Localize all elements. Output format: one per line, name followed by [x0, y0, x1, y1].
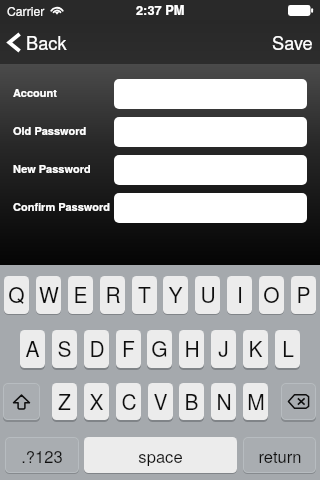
- staticText: J: [218, 333, 229, 363]
- button[interactable]: S: [52, 330, 77, 368]
- staticText: Carrier: [7, 2, 45, 19]
- staticText: V: [153, 386, 168, 416]
- button[interactable]: Q: [4, 276, 29, 314]
- button[interactable]: Shift: [3, 383, 40, 420]
- button[interactable]: E: [68, 276, 93, 314]
- staticText: I: [237, 279, 243, 309]
- button[interactable]: J: [211, 330, 236, 368]
- staticText: K: [248, 333, 263, 363]
- button[interactable]: Account: [13, 85, 57, 101]
- button[interactable]: X: [84, 383, 109, 420]
- staticText: .?123: [21, 444, 63, 468]
- staticText: S: [57, 333, 72, 363]
- staticText: U: [200, 279, 216, 309]
- button[interactable]: O: [259, 276, 284, 314]
- button[interactable]: Confirm Password: [13, 199, 111, 215]
- button[interactable]: [114, 155, 307, 185]
- button[interactable]: Back: [0, 23, 77, 61]
- staticText: P: [296, 279, 311, 309]
- button[interactable]: Save: [263, 21, 320, 63]
- button[interactable]: M: [243, 383, 268, 420]
- button[interactable]: Delete: [281, 383, 316, 420]
- staticText: Back: [26, 29, 67, 55]
- button[interactable]: New Password: [13, 161, 91, 177]
- staticText: X: [89, 386, 104, 416]
- button[interactable]: [114, 193, 307, 223]
- staticText: L: [282, 333, 294, 363]
- button[interactable]: V: [148, 383, 173, 420]
- staticText: N: [216, 386, 232, 416]
- staticText: C: [121, 386, 137, 416]
- staticText: A: [25, 333, 40, 363]
- staticText: 2:37 PM: [136, 1, 185, 19]
- button[interactable]: L: [275, 330, 300, 368]
- staticText: Z: [58, 386, 71, 416]
- button[interactable]: .?123: [5, 437, 79, 473]
- button[interactable]: U: [195, 276, 220, 314]
- button[interactable]: F: [116, 330, 141, 368]
- button[interactable]: I: [227, 276, 252, 314]
- staticText: E: [73, 279, 88, 309]
- button[interactable]: G: [147, 330, 172, 368]
- button[interactable]: W: [36, 276, 61, 314]
- staticText: G: [151, 333, 168, 363]
- button[interactable]: R: [100, 276, 125, 314]
- button[interactable]: Z: [52, 383, 77, 420]
- staticText: W: [39, 279, 59, 309]
- button[interactable]: B: [179, 383, 204, 420]
- staticText: F: [122, 333, 135, 363]
- staticText: Y: [168, 279, 183, 309]
- button[interactable]: Old Password: [13, 123, 87, 139]
- button[interactable]: A: [20, 330, 45, 368]
- button[interactable]: Y: [163, 276, 188, 314]
- button[interactable]: H: [179, 330, 204, 368]
- button[interactable]: return: [243, 437, 316, 473]
- button[interactable]: space: [84, 437, 237, 473]
- button[interactable]: [114, 117, 307, 147]
- button[interactable]: [114, 79, 307, 109]
- staticText: Q: [8, 279, 25, 309]
- staticText: R: [105, 279, 121, 309]
- staticText: return: [258, 444, 302, 468]
- button[interactable]: T: [132, 276, 157, 314]
- button[interactable]: D: [84, 330, 109, 368]
- button[interactable]: N: [211, 383, 236, 420]
- staticText: space: [138, 444, 183, 468]
- staticText: T: [138, 279, 151, 309]
- staticText: B: [184, 386, 199, 416]
- button[interactable]: C: [116, 383, 141, 420]
- button[interactable]: K: [243, 330, 268, 368]
- button[interactable]: P: [291, 276, 316, 314]
- staticText: D: [89, 333, 105, 363]
- staticText: H: [184, 333, 200, 363]
- staticText: O: [263, 279, 280, 309]
- staticText: M: [247, 386, 265, 416]
